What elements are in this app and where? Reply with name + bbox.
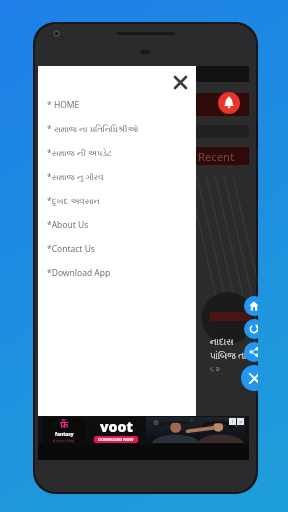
- staticText: નાદાસ: [210, 338, 234, 347]
- staticText: Recent: [198, 149, 235, 164]
- button[interactable]: Close menu: [170, 72, 190, 92]
- button[interactable]: *Download App: [38, 261, 196, 285]
- button[interactable]: *Contact Us: [38, 237, 196, 261]
- staticText: *દુખદ અવસાન: [47, 195, 100, 207]
- staticText: *સમાજ ની અપડેટ: [47, 147, 112, 159]
- button[interactable]: *દુખદ અવસાન: [38, 189, 196, 213]
- button[interactable]: Refresh: [244, 319, 258, 339]
- button[interactable]: * HOME: [38, 93, 196, 117]
- staticText: i: [232, 418, 234, 425]
- staticText: *About Us: [47, 219, 89, 231]
- staticText: *સમાજ નુ ગૌરવ: [47, 171, 104, 183]
- button[interactable]: Notifications: [218, 92, 240, 114]
- staticText: DOWNLOAD NOW: [98, 437, 134, 442]
- staticText: ૬ ૨: [210, 364, 220, 374]
- button[interactable]: *About Us: [38, 213, 196, 237]
- staticText: voot: [100, 417, 133, 436]
- staticText: * સમાજ ના પ્રતિનિધિશ્રીઓ: [47, 123, 139, 135]
- staticText: फ़ैं: [60, 417, 69, 431]
- button[interactable]: Close ad: [237, 418, 244, 425]
- staticText: *Contact Us: [47, 243, 95, 255]
- staticText: fantasy: [55, 431, 74, 438]
- staticText: *Download App: [47, 267, 111, 279]
- staticText: A music blog: [53, 438, 75, 443]
- staticText: પાંબિજ તા.: [210, 349, 249, 361]
- button[interactable]: Share: [244, 342, 258, 362]
- staticText: ×: [239, 418, 243, 425]
- button[interactable]: Close: [241, 365, 258, 391]
- staticText: * HOME: [47, 99, 80, 111]
- button[interactable]: Home: [244, 296, 258, 316]
- button[interactable]: * સમાજ ના પ્રતિનિધિશ્રીઓ: [38, 117, 196, 141]
- button[interactable]: Advertisement: [42, 417, 245, 443]
- button[interactable]: *સમાજ ની અપડેટ: [38, 141, 196, 165]
- button[interactable]: *સમાજ નુ ગૌરવ: [38, 165, 196, 189]
